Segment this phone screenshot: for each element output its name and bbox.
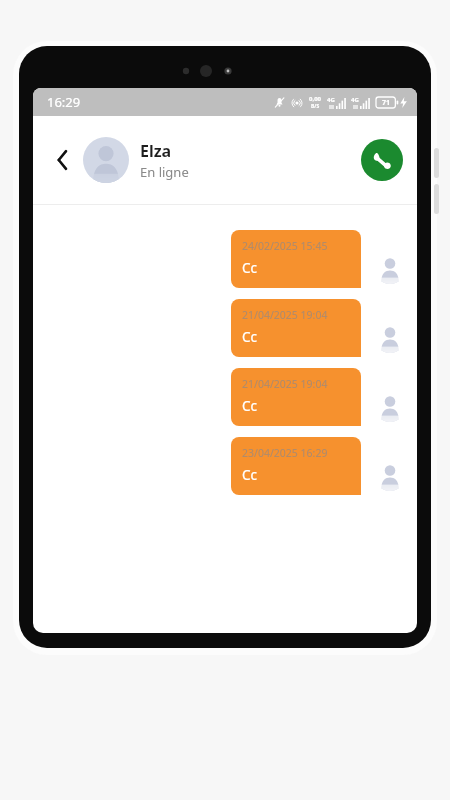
staticText: 21/04/2025 19:04 [242,308,328,322]
staticText: Cc [242,259,258,277]
staticText: 0,00 [309,95,322,103]
staticText: 71 [382,98,391,108]
button[interactable]: 21/04/2025 19:04 [33,299,406,357]
staticText: 16:29 [47,93,81,111]
button[interactable]: Back [47,145,77,175]
staticText: 4G [327,96,335,104]
staticText: 21/04/2025 19:04 [242,377,328,391]
button[interactable]: 21/04/2025 19:04 [33,368,406,426]
staticText: 23/04/2025 16:29 [242,446,328,460]
staticText: 24/02/2025 15:45 [242,239,328,253]
staticText: Cc [242,397,258,415]
button[interactable]: Call [361,139,403,181]
staticText: Cc [242,328,258,346]
staticText: Elza [140,140,172,162]
staticText: En ligne [140,163,189,181]
button[interactable]: 24/02/2025 15:45 [33,230,406,288]
button[interactable]: 23/04/2025 16:29 [33,437,406,495]
staticText: 4G [351,96,359,104]
staticText: Cc [242,466,258,484]
staticText: B/S [311,103,320,110]
